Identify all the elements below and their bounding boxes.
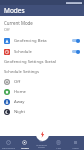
button[interactable]: Current Mode xyxy=(0,16,84,35)
button[interactable]: Schedule Setup xyxy=(33,136,50,150)
button[interactable]: Home xyxy=(0,87,84,97)
staticText: Modes xyxy=(4,6,25,15)
staticText: Dashboard xyxy=(2,146,15,149)
staticText: Geofencing Beta xyxy=(14,38,47,44)
staticText: Night xyxy=(14,109,25,115)
button[interactable]: Log xyxy=(50,136,67,150)
staticText: Modes xyxy=(21,146,29,149)
button[interactable]: Off xyxy=(0,77,84,87)
button[interactable]: Geofencing Beta xyxy=(0,35,84,46)
staticText: Log xyxy=(56,146,61,149)
staticText: Away xyxy=(14,99,25,105)
button[interactable]: Add mode xyxy=(36,128,49,141)
staticText: Off xyxy=(4,27,10,32)
button[interactable]: Away xyxy=(0,97,84,107)
staticText: Schedule Settings xyxy=(4,69,39,75)
staticText: Off xyxy=(14,79,21,85)
button[interactable]: Toggle Schedule xyxy=(71,49,80,54)
button[interactable]: Toggle Geofencing Beta xyxy=(71,38,80,43)
button[interactable]: Dashboard xyxy=(0,136,16,150)
staticText: More xyxy=(72,146,79,149)
button[interactable]: Modes xyxy=(16,136,33,150)
staticText: Home xyxy=(14,89,26,95)
staticText: Schedule xyxy=(14,49,32,55)
staticText: Current Mode xyxy=(4,20,33,26)
button[interactable]: More xyxy=(67,136,84,150)
button[interactable]: Night xyxy=(0,107,84,117)
staticText: Schedule Setup xyxy=(36,143,47,149)
staticText: Geofencing Settings (beta) xyxy=(4,59,57,65)
button[interactable]: Schedule xyxy=(0,46,84,57)
